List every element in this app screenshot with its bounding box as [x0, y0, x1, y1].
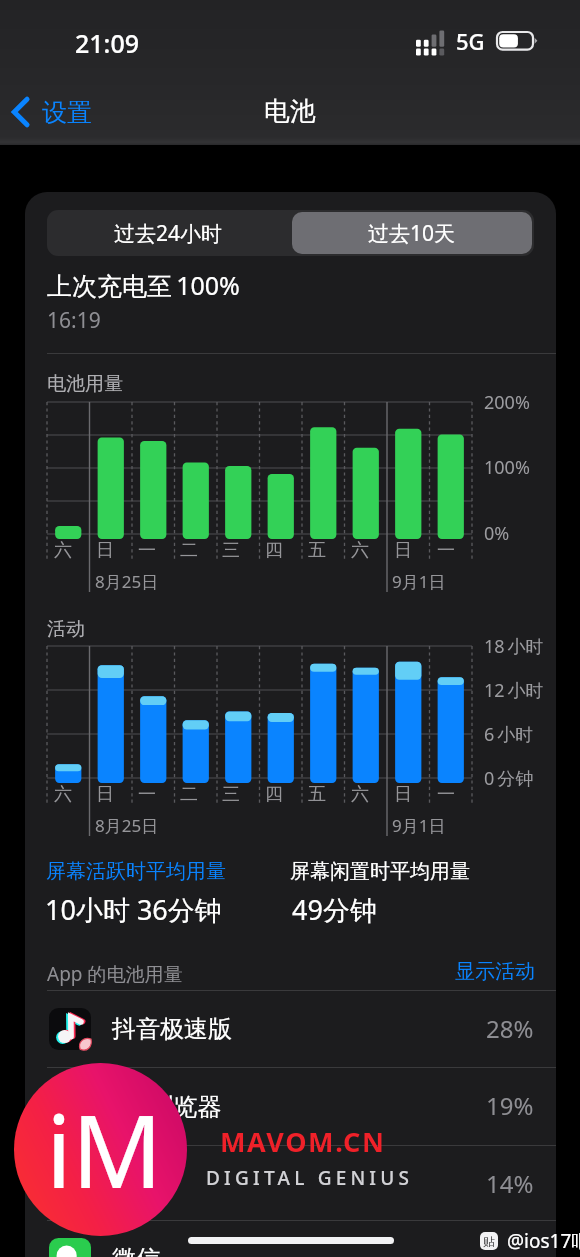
staticText: 四 — [265, 539, 283, 562]
staticText: 日 — [394, 539, 412, 562]
staticText: 0 分钟 — [484, 766, 534, 791]
staticText: 五 — [308, 539, 326, 562]
staticText: 12 小时 — [484, 678, 544, 703]
other: Cellular signal — [416, 27, 445, 55]
button[interactable]: QQ浏览器 — [47, 1067, 556, 1144]
button[interactable]: Back — [9, 96, 92, 128]
staticText: 21:09 — [75, 26, 140, 60]
button[interactable]: 微信 — [47, 1220, 556, 1257]
staticText: 设置 — [112, 1169, 160, 1199]
staticText: @ios17吧 — [507, 1228, 580, 1254]
staticText: 一 — [138, 539, 156, 562]
staticText: 200% — [484, 390, 530, 415]
staticText: 设置 — [42, 97, 92, 128]
staticText: 一 — [437, 539, 455, 562]
staticText: 六 — [351, 539, 369, 562]
staticText: 9月1日 — [392, 814, 446, 837]
staticText: 49分钟 — [292, 891, 377, 928]
staticText: 六 — [351, 783, 369, 806]
staticText: 屏幕闲置时平均用量 — [290, 859, 470, 884]
button[interactable]: 设置 — [47, 1145, 556, 1222]
staticText: 三 — [222, 539, 240, 562]
staticText: 六 — [54, 783, 72, 806]
staticText: 六 — [54, 539, 72, 562]
staticText: 过去10天 — [368, 219, 456, 248]
staticText: 0% — [484, 521, 510, 546]
button[interactable]: 过去24小时 — [47, 210, 290, 256]
staticText: 电池用量 — [47, 372, 123, 396]
staticText: 8月25日 — [95, 570, 159, 593]
staticText: 日 — [96, 783, 114, 806]
staticText: DIGITAL GENIUS — [206, 1165, 414, 1191]
staticText: 过去24小时 — [114, 219, 223, 248]
staticText: 二 — [180, 539, 198, 562]
staticText: 9月1日 — [392, 570, 446, 593]
staticText: 一 — [138, 783, 156, 806]
staticText: 微信 — [112, 1244, 160, 1257]
staticText: App 的电池用量 — [47, 961, 183, 987]
staticText: 日 — [394, 783, 412, 806]
staticText: 18 小时 — [484, 634, 544, 659]
other: Battery — [496, 32, 537, 50]
staticText: 二 — [180, 783, 198, 806]
staticText: 一 — [437, 783, 455, 806]
button[interactable]: 抖音极速版 — [47, 990, 556, 1067]
staticText: 抖音极速版 — [112, 1014, 232, 1044]
staticText: 屏幕活跃时平均用量 — [46, 859, 226, 884]
staticText: 6 小时 — [484, 722, 534, 747]
staticText: 5G — [456, 26, 485, 56]
staticText: iM — [46, 1081, 163, 1217]
staticText: 贴 — [483, 1234, 495, 1249]
staticText: 三 — [222, 783, 240, 806]
staticText: 四 — [265, 783, 283, 806]
staticText: 日 — [96, 539, 114, 562]
staticText: 28% — [486, 1012, 534, 1045]
other: Back — [9, 96, 30, 128]
staticText: 16:19 — [47, 306, 101, 335]
staticText: QQ浏览器 — [112, 1089, 222, 1122]
staticText: 8月25日 — [95, 814, 159, 837]
staticText: 19% — [486, 1089, 534, 1122]
button[interactable]: 过去10天 — [292, 212, 532, 254]
staticText: 上次充电至 100% — [47, 268, 240, 302]
staticText: MAVOM.CN — [220, 1123, 386, 1160]
staticText: 五 — [308, 783, 326, 806]
button[interactable]: 显示活动 — [455, 959, 535, 984]
staticText: 100% — [484, 455, 530, 480]
staticText: 14% — [486, 1167, 534, 1200]
staticText: 电池 — [264, 95, 316, 128]
staticText: 活动 — [47, 617, 85, 641]
staticText: 10小时 36分钟 — [45, 891, 222, 928]
